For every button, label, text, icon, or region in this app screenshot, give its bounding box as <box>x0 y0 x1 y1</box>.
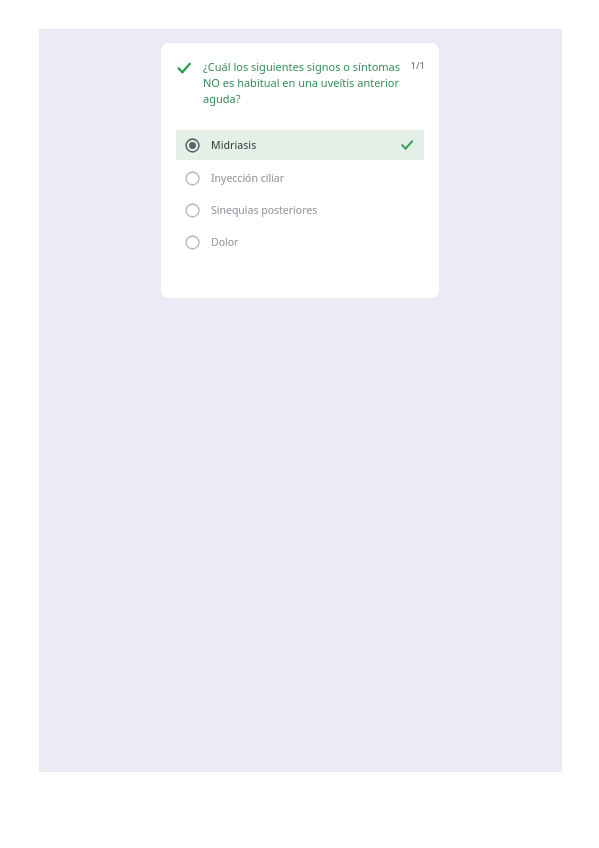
button[interactable]: Sinequias posteriores <box>176 194 424 226</box>
button[interactable]: Inyección ciliar <box>176 162 424 194</box>
staticText: Midriasis <box>211 138 257 152</box>
staticText: ¿Cuál los siguientes signos o síntomas N… <box>203 59 404 106</box>
staticText: Inyección ciliar <box>211 171 285 185</box>
button[interactable]: Dolor <box>176 226 424 258</box>
staticText: Dolor <box>211 235 239 249</box>
button[interactable]: Midriasis <box>176 130 424 160</box>
staticText: Sinequias posteriores <box>211 203 318 217</box>
staticText: 1/1 <box>410 59 425 72</box>
